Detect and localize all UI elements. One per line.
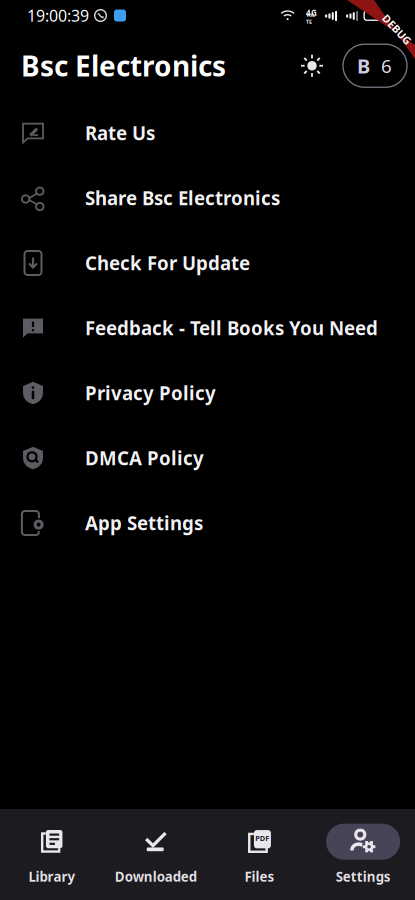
staticText: App Settings — [85, 511, 203, 535]
staticText: Share Bsc Electronics — [85, 186, 280, 210]
button[interactable]: Check For Update — [0, 230, 415, 295]
button[interactable]: Rate Us — [0, 100, 415, 165]
staticText: 4G — [306, 7, 317, 18]
staticText: Rate Us — [85, 121, 155, 145]
button[interactable]: Downloaded — [104, 824, 208, 885]
button[interactable]: Feedback - Tell Books You Need — [0, 295, 415, 360]
staticText: VoLTE — [306, 11, 317, 25]
staticText: Feedback - Tell Books You Need — [85, 316, 378, 340]
button[interactable]: DMCA Policy — [0, 425, 415, 490]
button[interactable]: PDF — [207, 824, 311, 885]
button[interactable]: Library — [0, 824, 104, 885]
staticText: Bsc Electronics — [21, 47, 226, 84]
staticText: Downloaded — [115, 868, 197, 885]
staticText: DEBUG — [378, 22, 415, 37]
button[interactable]: Settings — [311, 824, 415, 885]
staticText: Library — [28, 868, 75, 885]
staticText: B — [357, 52, 370, 79]
button[interactable]: B — [343, 44, 407, 87]
staticText: Privacy Policy — [85, 381, 216, 405]
staticText: Settings — [336, 868, 391, 885]
staticText: DMCA Policy — [85, 446, 204, 470]
staticText: 6 — [381, 53, 392, 78]
button[interactable]: App Settings — [0, 490, 415, 555]
staticText: 19:00:39 — [27, 5, 89, 26]
staticText: PDF — [256, 834, 269, 843]
staticText: Files — [244, 868, 274, 885]
button[interactable]: Share Bsc Electronics — [0, 165, 415, 230]
button[interactable]: Toggle theme — [294, 48, 330, 84]
button[interactable]: Privacy Policy — [0, 360, 415, 425]
staticText: Check For Update — [85, 251, 250, 275]
